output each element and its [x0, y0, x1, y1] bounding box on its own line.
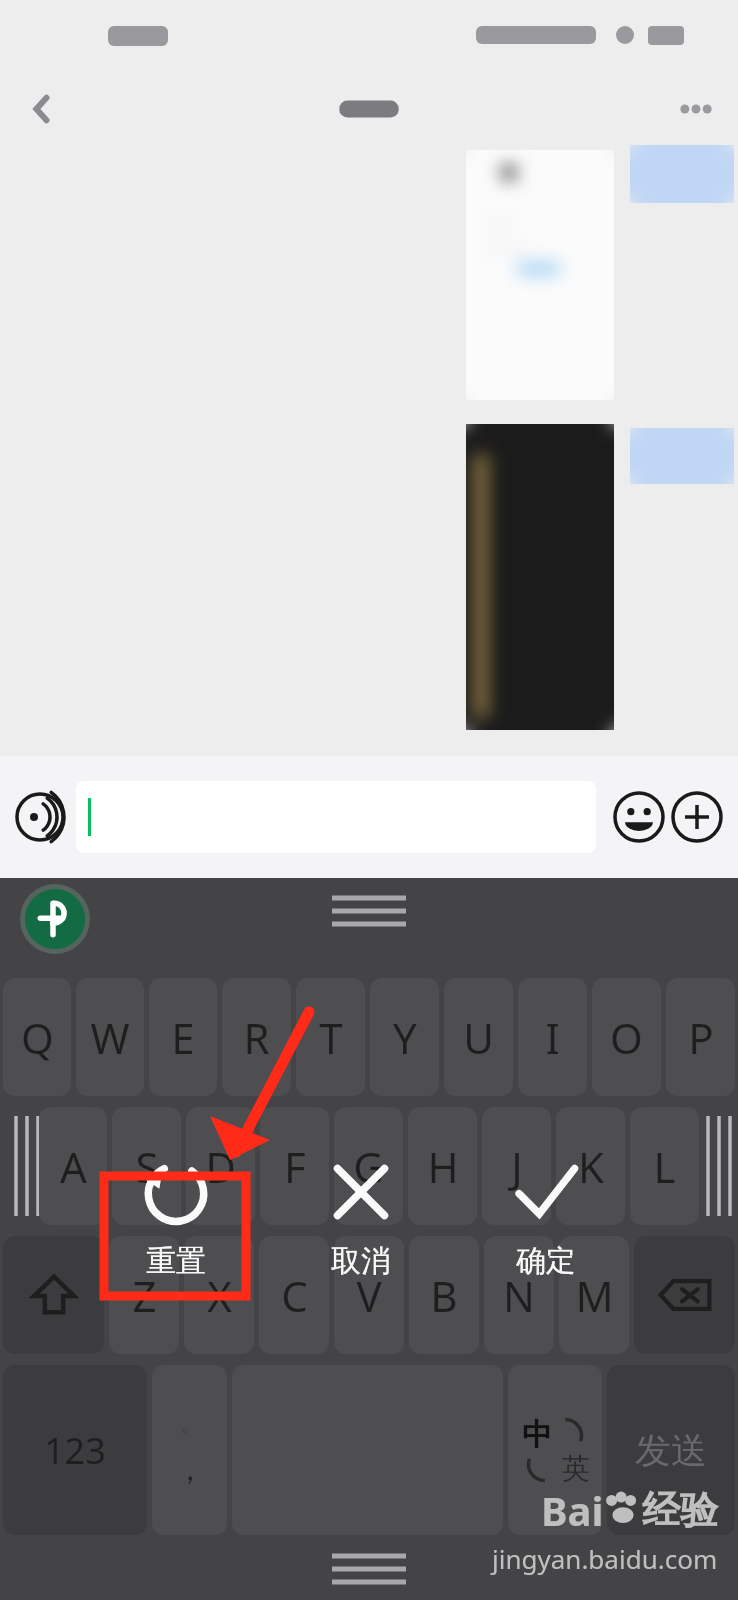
button[interactable]: Back	[14, 81, 70, 137]
button[interactable]: Voice input	[12, 789, 68, 845]
staticText: X	[207, 1267, 232, 1324]
button[interactable]: 重置	[116, 1150, 236, 1280]
staticText: O	[610, 1009, 643, 1066]
button[interactable]: L	[630, 1107, 699, 1225]
staticText: Z	[132, 1267, 157, 1324]
staticText: 取消	[331, 1242, 391, 1280]
button[interactable]: 确定	[486, 1150, 606, 1280]
button[interactable]: I	[518, 978, 587, 1096]
staticText: Q	[21, 1009, 54, 1066]
staticText: J	[511, 1138, 523, 1195]
staticText: G	[353, 1138, 384, 1195]
staticText: jingyan.baidu.com	[492, 1541, 718, 1576]
staticText: P	[688, 1009, 714, 1066]
staticText: Bai	[541, 1483, 604, 1537]
button[interactable]: Backspace	[634, 1236, 735, 1354]
staticText: T	[319, 1009, 343, 1066]
staticText: B	[430, 1267, 458, 1324]
staticText: N	[503, 1267, 535, 1324]
staticText: ，	[175, 1451, 205, 1489]
staticText: R	[243, 1009, 270, 1066]
button[interactable]: M	[559, 1236, 629, 1354]
button[interactable]: 发送	[607, 1365, 735, 1535]
button[interactable]: P	[666, 978, 735, 1096]
button[interactable]: V	[334, 1236, 404, 1354]
button[interactable]: A	[39, 1107, 107, 1225]
button[interactable]: N	[484, 1236, 554, 1354]
button[interactable]: W	[76, 978, 144, 1096]
button[interactable]: More functions	[668, 788, 726, 846]
staticText: W	[90, 1009, 130, 1066]
button[interactable]: S	[112, 1107, 181, 1225]
button[interactable]: T	[296, 978, 365, 1096]
button[interactable]: 取消	[301, 1150, 421, 1280]
button[interactable]: H	[408, 1107, 477, 1225]
staticText: 英	[562, 1451, 590, 1486]
button[interactable]: Y	[370, 978, 439, 1096]
button[interactable]: Input method menu	[20, 884, 90, 954]
staticText: E	[171, 1009, 195, 1066]
staticText: U	[463, 1009, 494, 1066]
staticText: C	[281, 1267, 308, 1324]
staticText: 经验	[642, 1486, 718, 1534]
button[interactable]: U	[444, 978, 513, 1096]
staticText: A	[60, 1138, 87, 1195]
button[interactable]: Emoji	[610, 788, 668, 846]
button[interactable]: More options	[668, 81, 724, 137]
button[interactable]: K	[556, 1107, 625, 1225]
button[interactable]: Hide keyboard	[332, 1552, 406, 1582]
button[interactable]: B	[409, 1236, 479, 1354]
staticText: K	[578, 1138, 604, 1195]
button[interactable]: Q	[3, 978, 71, 1096]
button[interactable]: F	[260, 1107, 329, 1225]
staticText: Y	[393, 1009, 417, 1066]
staticText: 123	[44, 1426, 106, 1475]
staticText: V	[356, 1267, 382, 1324]
button[interactable]: J	[482, 1107, 551, 1225]
staticText: M	[575, 1267, 614, 1324]
button[interactable]: G	[334, 1107, 403, 1225]
staticText: S	[135, 1138, 159, 1195]
staticText: L	[653, 1138, 676, 1195]
button[interactable]: E	[149, 978, 217, 1096]
button[interactable]: Z	[109, 1236, 179, 1354]
staticText: I	[545, 1009, 560, 1066]
button[interactable]: X	[184, 1236, 254, 1354]
button[interactable]: C	[259, 1236, 329, 1354]
button[interactable]	[76, 781, 596, 853]
button[interactable]: Shift	[3, 1236, 104, 1354]
staticText: 发送	[635, 1428, 707, 1473]
button[interactable]: 123	[3, 1365, 147, 1535]
staticText: H	[427, 1138, 459, 1195]
staticText: 确定	[516, 1242, 576, 1280]
staticText: 中	[522, 1416, 552, 1454]
button[interactable]: R	[222, 978, 291, 1096]
button[interactable]: O	[592, 978, 661, 1096]
staticText: F	[284, 1138, 306, 1195]
button[interactable]: Switch Chinese English	[508, 1365, 602, 1535]
staticText: 重置	[146, 1242, 206, 1280]
button[interactable]: D	[186, 1107, 255, 1225]
button[interactable]: Keyboard handle	[332, 892, 406, 926]
staticText: D	[205, 1138, 236, 1195]
